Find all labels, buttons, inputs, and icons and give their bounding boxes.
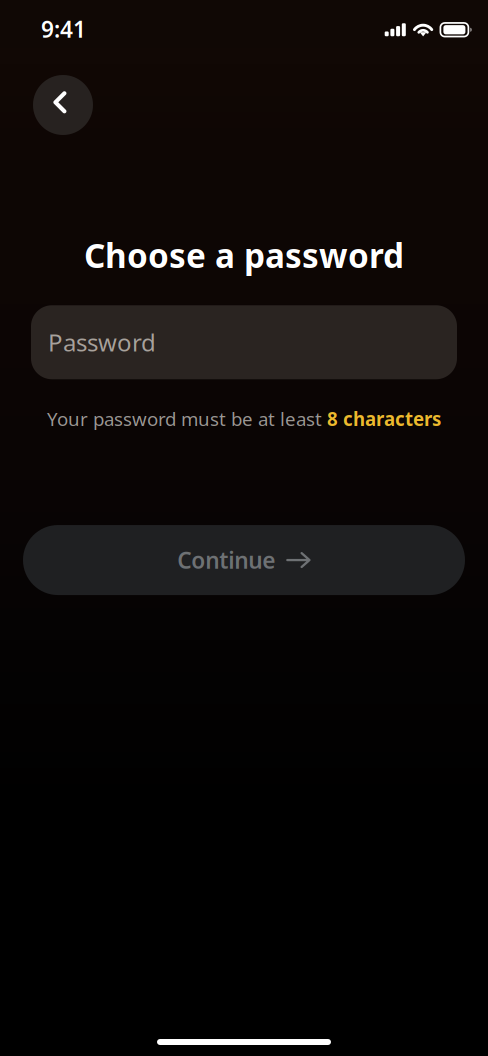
staticText: 8 characters bbox=[327, 406, 441, 431]
staticText: 9:41 bbox=[41, 14, 86, 44]
staticText: Password bbox=[48, 326, 156, 358]
button[interactable]: Back bbox=[33, 75, 93, 135]
button[interactable]: Continue bbox=[23, 525, 465, 595]
button[interactable]: Password bbox=[31, 305, 457, 379]
staticText: Continue bbox=[177, 545, 275, 575]
staticText: Your password must be at least bbox=[47, 406, 327, 431]
staticText: Choose a password bbox=[84, 233, 404, 277]
